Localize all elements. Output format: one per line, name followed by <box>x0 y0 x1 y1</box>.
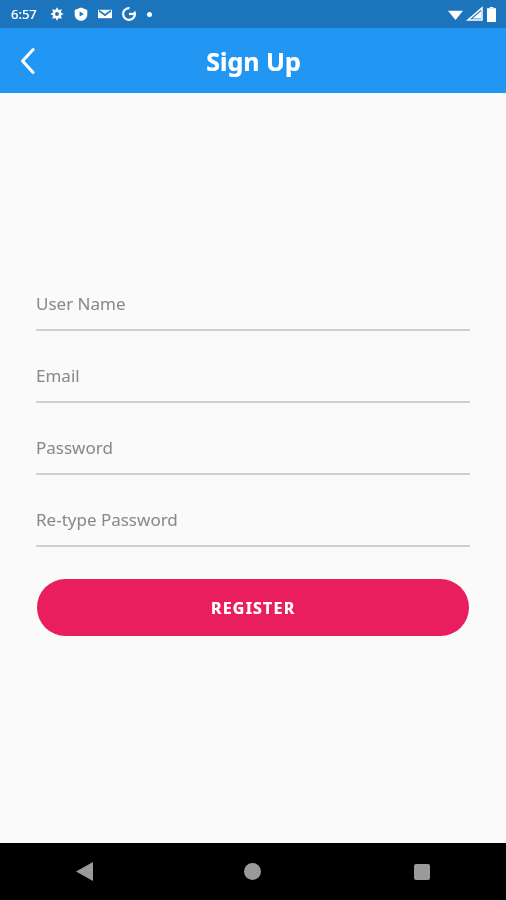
staticText: Sign Up <box>206 44 301 78</box>
staticText: Password <box>36 436 113 459</box>
staticText: User Name <box>36 292 126 315</box>
button[interactable]: Back <box>0 33 56 89</box>
button[interactable]: REGISTER <box>37 579 469 636</box>
button[interactable]: Back <box>0 843 168 900</box>
staticText: Re-type Password <box>36 508 178 531</box>
button[interactable]: Email <box>36 361 470 403</box>
staticText: Email <box>36 364 80 387</box>
button[interactable]: Re-type Password <box>36 505 470 547</box>
button[interactable]: Home <box>168 843 337 900</box>
button[interactable]: Recent apps <box>337 843 506 900</box>
button[interactable]: User Name <box>36 289 470 331</box>
staticText: REGISTER <box>211 597 296 619</box>
button[interactable]: Password <box>36 433 470 475</box>
staticText: 6:57 <box>11 5 37 23</box>
